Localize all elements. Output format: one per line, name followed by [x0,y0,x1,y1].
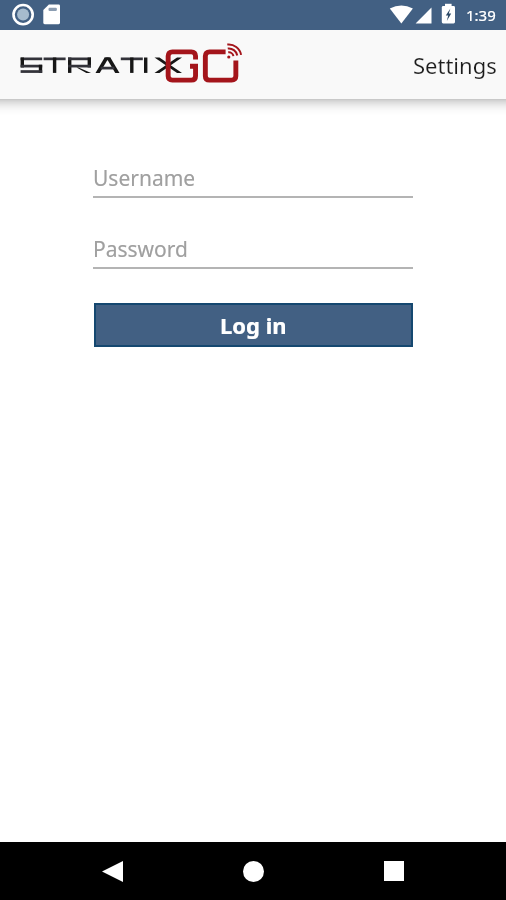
button[interactable]: Log in [94,303,413,347]
button[interactable]: Recents [365,842,423,900]
button[interactable]: Home [224,842,282,900]
staticText: Settings [413,50,497,80]
staticText: Log in [220,310,287,340]
staticText: Username [93,164,196,193]
button[interactable]: Password [93,235,413,269]
button[interactable]: Settings [404,42,506,88]
staticText: Password [93,235,188,264]
button[interactable]: Back [83,842,141,900]
staticText: 1:39 [466,5,496,25]
button[interactable]: Username [93,164,413,198]
